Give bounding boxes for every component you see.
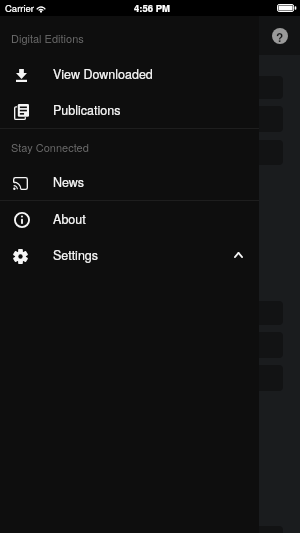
- button[interactable]: Settings: [0, 237, 259, 273]
- staticText: Digital Editions: [11, 30, 84, 46]
- staticText: News: [53, 173, 85, 191]
- other: Wi-Fi: [36, 5, 46, 12]
- staticText: View Downloaded: [53, 65, 153, 83]
- button[interactable]: Help: [272, 28, 288, 44]
- button[interactable]: [246, 526, 283, 533]
- button[interactable]: Publications: [0, 92, 259, 128]
- staticText: Stay Connected: [11, 139, 89, 155]
- other: Battery: [277, 4, 296, 12]
- staticText: 4:56 PM: [134, 1, 170, 15]
- staticText: Publications: [53, 101, 121, 119]
- button[interactable]: [246, 106, 283, 132]
- staticText: Settings: [53, 246, 99, 264]
- button[interactable]: View Downloaded: [0, 56, 259, 92]
- staticText: About: [53, 210, 86, 228]
- button[interactable]: News: [0, 164, 259, 200]
- staticText: Carrier: [5, 1, 35, 15]
- staticText: ?: [276, 28, 284, 44]
- button[interactable]: About: [0, 201, 259, 237]
